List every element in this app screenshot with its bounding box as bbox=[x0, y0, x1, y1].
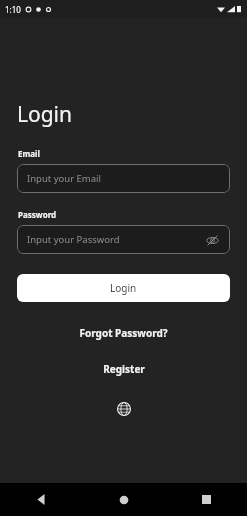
staticText: Login bbox=[17, 100, 73, 129]
button[interactable]: Change language bbox=[111, 396, 137, 422]
button[interactable]: Recent apps bbox=[165, 483, 247, 516]
button[interactable]: Back bbox=[0, 483, 83, 516]
button[interactable]: Input your Email bbox=[17, 164, 230, 193]
staticText: Email bbox=[18, 148, 40, 159]
staticText: Forgot Password? bbox=[79, 326, 168, 340]
staticText: Password bbox=[18, 209, 57, 220]
staticText: 1:10 bbox=[5, 4, 21, 15]
button[interactable]: Show password bbox=[204, 232, 220, 248]
button[interactable]: Register bbox=[0, 360, 247, 378]
staticText: Input your Email bbox=[27, 172, 220, 185]
button[interactable]: Input your Password bbox=[17, 225, 230, 254]
staticText: Login bbox=[110, 281, 137, 295]
staticText: Input your Password bbox=[27, 233, 204, 246]
button[interactable]: Home bbox=[83, 483, 165, 516]
button[interactable]: Forgot Password? bbox=[0, 324, 247, 342]
button[interactable]: Login bbox=[17, 274, 230, 302]
staticText: Register bbox=[103, 362, 145, 376]
